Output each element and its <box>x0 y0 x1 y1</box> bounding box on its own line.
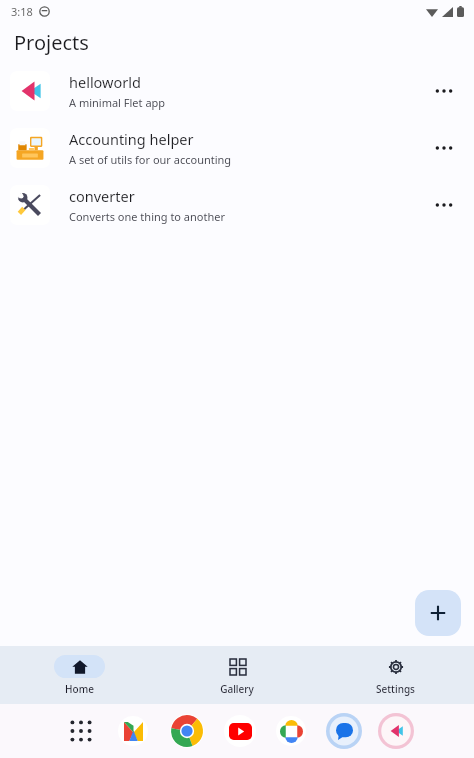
staticText: A set of utils for our accounting <box>69 152 232 167</box>
button[interactable]: Accounting helper <box>0 119 474 176</box>
button[interactable]: Messages <box>326 713 362 749</box>
button[interactable]: Google Photos <box>276 716 306 746</box>
staticText: Gallery <box>220 682 254 696</box>
button[interactable]: Home <box>0 646 158 704</box>
button[interactable]: Settings <box>316 646 474 704</box>
button[interactable]: Chrome <box>170 714 204 748</box>
staticText: converter <box>69 186 135 206</box>
button[interactable]: helloworld <box>0 62 474 119</box>
staticText: Settings <box>376 682 415 696</box>
staticText: Projects <box>14 29 89 56</box>
button[interactable]: YouTube <box>224 715 256 747</box>
button[interactable]: helloworld app <box>378 713 414 749</box>
button[interactable]: Add project <box>415 590 461 636</box>
staticText: Converts one thing to another <box>69 209 226 224</box>
staticText: 3:18 <box>11 4 33 19</box>
button[interactable]: Gmail <box>118 716 148 746</box>
staticText: Home <box>65 682 94 696</box>
button[interactable]: Gallery <box>158 646 316 704</box>
button[interactable]: More options <box>424 185 464 225</box>
button[interactable]: All apps <box>68 718 94 744</box>
staticText: helloworld <box>69 72 141 92</box>
button[interactable]: converter <box>0 176 474 233</box>
button[interactable]: More options <box>424 71 464 111</box>
button[interactable]: More options <box>424 128 464 168</box>
staticText: A minimal Flet app <box>69 95 166 110</box>
staticText: Accounting helper <box>69 129 194 149</box>
